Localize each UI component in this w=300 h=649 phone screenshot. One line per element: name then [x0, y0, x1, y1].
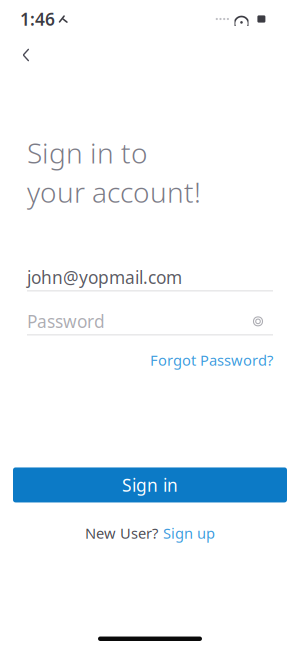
button[interactable]: Sign up: [163, 523, 215, 543]
staticText: Password: [27, 310, 105, 333]
button[interactable]: Show password: [243, 308, 273, 334]
staticText: Sign up: [163, 523, 215, 543]
button[interactable]: Forgot Password?: [150, 346, 273, 374]
staticText: Forgot Password?: [150, 350, 273, 370]
staticText: Sign in: [122, 473, 178, 496]
staticText: 1:46: [20, 7, 55, 30]
button[interactable]: Sign in: [13, 467, 287, 502]
button[interactable]: Back: [6, 38, 46, 72]
staticText: your account!: [27, 173, 201, 210]
staticText: Sign in to: [27, 134, 148, 171]
staticText: New User?: [85, 523, 158, 543]
staticText: john@yopmail.com: [27, 266, 182, 289]
